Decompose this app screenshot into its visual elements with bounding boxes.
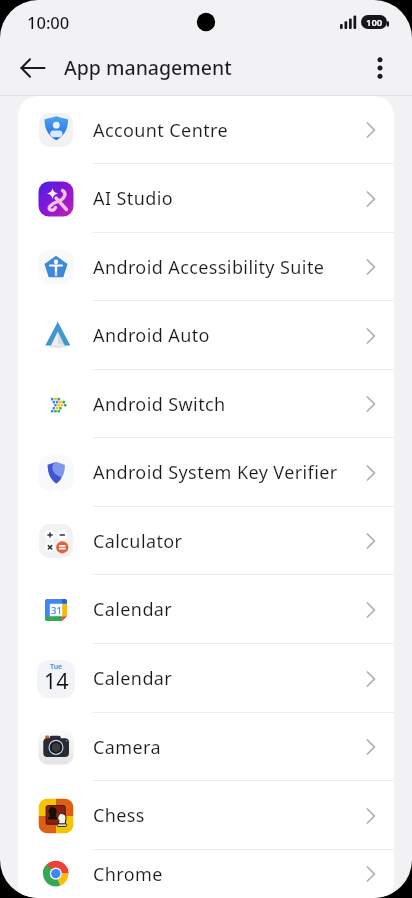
staticText: Chess xyxy=(93,803,145,828)
staticText: 10:00 xyxy=(27,11,70,33)
button[interactable]: 31 xyxy=(18,575,394,644)
button[interactable]: Chess xyxy=(18,781,394,850)
staticText: Android Switch xyxy=(93,392,226,417)
staticText: Tue xyxy=(50,662,63,672)
staticText: Android Auto xyxy=(93,323,210,348)
button[interactable] xyxy=(364,52,396,84)
button[interactable]: Android System Key Verifier xyxy=(18,438,394,507)
button[interactable]: Android Switch xyxy=(18,370,394,438)
staticText: Account Centre xyxy=(93,118,229,143)
staticText: Chrome xyxy=(93,862,163,887)
button[interactable]: Android Auto xyxy=(18,301,394,370)
staticText: Camera xyxy=(93,735,162,760)
button[interactable]: Calculator xyxy=(18,507,394,575)
staticText: 31 xyxy=(51,604,62,617)
staticText: Calculator xyxy=(93,529,183,554)
staticText: App management xyxy=(64,54,232,81)
button[interactable]: AI Studio xyxy=(18,164,394,233)
staticText: AI Studio xyxy=(93,186,173,211)
button[interactable]: Android Accessibility Suite xyxy=(18,233,394,301)
staticText: Calendar xyxy=(93,597,173,622)
button[interactable]: Chrome xyxy=(18,850,394,898)
button[interactable]: Tue xyxy=(18,644,394,713)
staticText: Calendar xyxy=(93,666,173,691)
staticText: 100 xyxy=(366,16,383,29)
staticText: Android System Key Verifier xyxy=(93,460,338,485)
button[interactable] xyxy=(14,49,52,87)
staticText: 14 xyxy=(44,666,69,695)
staticText: Android Accessibility Suite xyxy=(93,255,325,280)
button[interactable]: Account Centre xyxy=(18,96,394,164)
button[interactable]: Camera xyxy=(18,713,394,781)
